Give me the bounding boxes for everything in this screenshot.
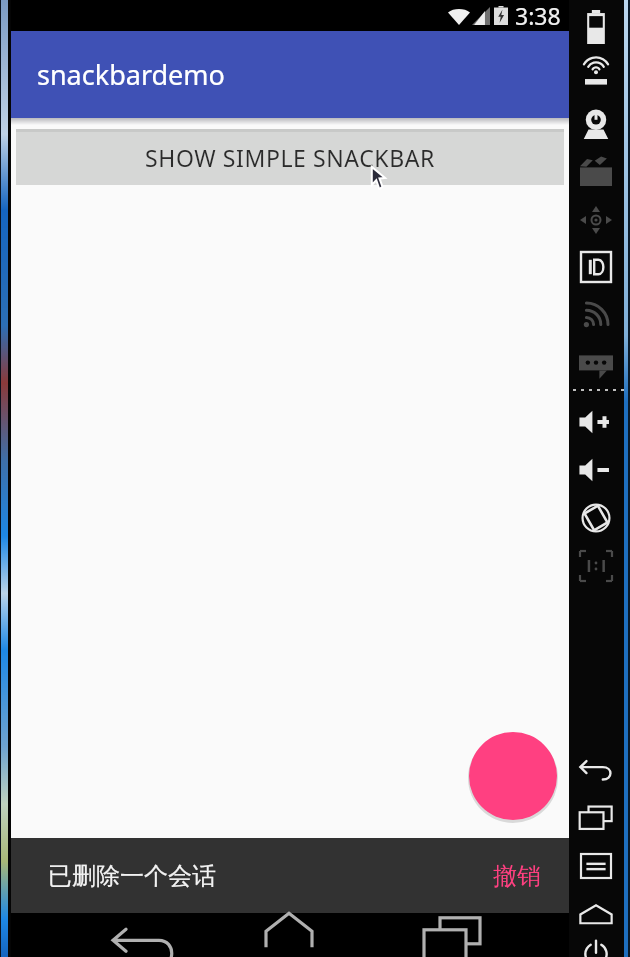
button[interactable]: Back	[579, 757, 613, 781]
button[interactable]: 撤销	[485, 855, 549, 897]
staticText: 已删除一个会话	[48, 861, 216, 891]
button[interactable]: Home	[256, 913, 322, 957]
button[interactable]: Menu	[581, 854, 611, 878]
button[interactable]: Add	[469, 732, 557, 820]
button[interactable]: Location	[578, 56, 614, 88]
button[interactable]: SHOW SIMPLE SNACKBAR	[16, 129, 564, 185]
staticText: snackbardemo	[37, 56, 225, 93]
button[interactable]: Record	[580, 156, 612, 186]
staticText: 3:38	[515, 0, 561, 31]
button[interactable]: Home	[579, 903, 613, 925]
button[interactable]: Power	[582, 940, 610, 957]
button[interactable]: Recent apps	[413, 913, 479, 957]
button[interactable]: Battery	[583, 10, 609, 44]
button[interactable]: Overview	[579, 805, 613, 831]
button[interactable]: Directional pad	[579, 205, 613, 235]
button[interactable]: Camera	[579, 107, 613, 139]
button[interactable]: Cellular	[581, 300, 611, 330]
button[interactable]: 已删除一个会话	[11, 838, 569, 913]
button[interactable]: Volume down	[578, 456, 614, 484]
button[interactable]: Rotate	[580, 502, 612, 534]
button[interactable]: Phone ID	[581, 252, 611, 282]
button[interactable]: Volume up	[578, 408, 614, 436]
button[interactable]: Zoom to actual size	[580, 551, 612, 581]
staticText: SHOW SIMPLE SNACKBAR	[145, 142, 435, 173]
button[interactable]: Back	[111, 913, 177, 957]
staticText: 撤销	[493, 861, 541, 891]
button[interactable]: Messages	[579, 350, 613, 380]
